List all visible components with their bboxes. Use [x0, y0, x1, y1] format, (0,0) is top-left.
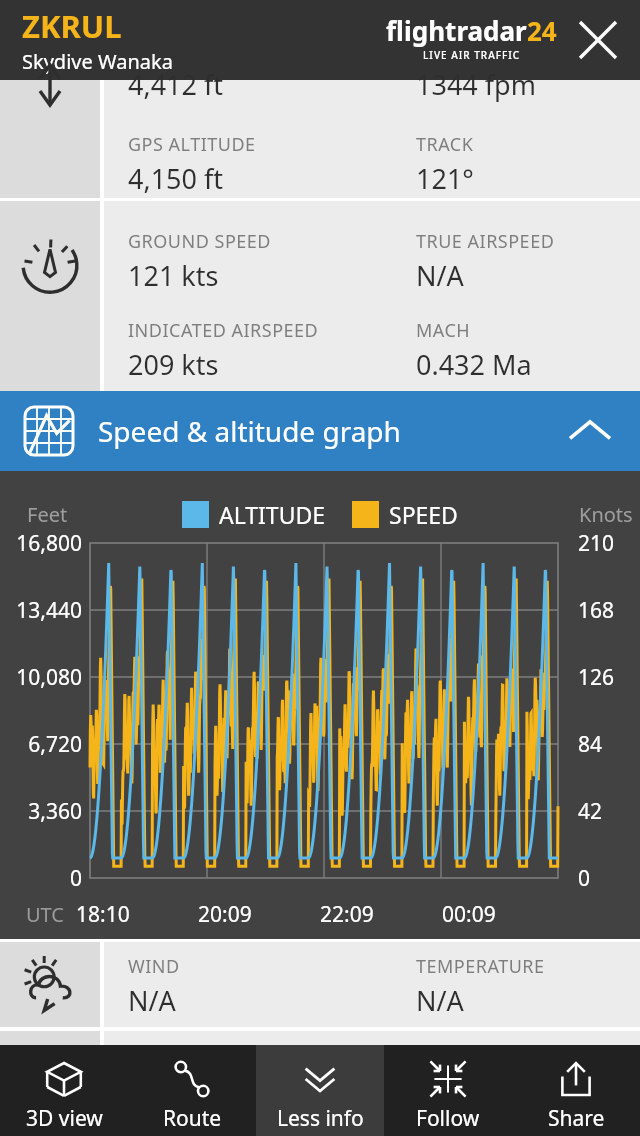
- staticText: UTC: [26, 901, 64, 928]
- button[interactable]: 3D view: [0, 1045, 128, 1136]
- button[interactable]: Close: [566, 8, 630, 72]
- staticText: 210: [578, 529, 615, 558]
- staticText: Feet: [27, 501, 68, 528]
- staticText: LIVE AIR TRAFFIC: [423, 48, 521, 62]
- button[interactable]: Share: [512, 1045, 640, 1136]
- other: Collapse: [566, 407, 614, 455]
- staticText: 168: [578, 596, 615, 625]
- staticText: WIND: [128, 954, 180, 979]
- staticText: 4,150 ft: [128, 160, 224, 197]
- staticText: 121°: [416, 160, 474, 197]
- staticText: 1344 fpm: [416, 66, 536, 103]
- staticText: Skydive Wanaka: [22, 48, 173, 75]
- staticText: Knots: [579, 501, 633, 528]
- staticText: ALTITUDE: [219, 499, 326, 530]
- staticText: 0: [578, 864, 591, 893]
- staticText: 6,720: [6, 730, 82, 759]
- button[interactable]: Route: [128, 1045, 256, 1136]
- staticText: flightradar: [386, 13, 527, 48]
- staticText: 4,412 ft: [128, 66, 224, 103]
- staticText: SPEED: [389, 499, 458, 530]
- staticText: Speed & altitude graph: [98, 412, 401, 450]
- staticText: TEMPERATURE: [416, 954, 545, 979]
- staticText: 3D view: [26, 1104, 103, 1133]
- staticText: 209 kts: [128, 346, 219, 383]
- button[interactable]: Less info: [256, 1045, 384, 1136]
- staticText: TRACK: [416, 132, 474, 157]
- staticText: N/A: [128, 982, 176, 1019]
- staticText: N/A: [416, 982, 464, 1019]
- staticText: Less info: [277, 1104, 364, 1133]
- staticText: 84: [578, 730, 603, 759]
- staticText: GROUND SPEED: [128, 229, 271, 254]
- staticText: Route: [163, 1104, 222, 1133]
- staticText: 22:09: [320, 900, 374, 929]
- staticText: MACH: [416, 318, 471, 343]
- staticText: TRUE AIRSPEED: [416, 229, 555, 254]
- staticText: 00:09: [442, 900, 496, 929]
- button[interactable]: Follow: [384, 1045, 512, 1136]
- staticText: 13,440: [6, 596, 82, 625]
- staticText: GPS ALTITUDE: [128, 132, 256, 157]
- staticText: 3,360: [6, 797, 82, 826]
- staticText: INDICATED AIRSPEED: [128, 318, 319, 343]
- staticText: 126: [578, 663, 615, 692]
- button[interactable]: Speed & altitude graph: [0, 391, 640, 471]
- staticText: 24: [527, 13, 557, 48]
- staticText: 10,080: [6, 663, 82, 692]
- staticText: ZKRUL: [22, 5, 122, 47]
- staticText: Follow: [416, 1104, 480, 1133]
- staticText: 18:10: [76, 900, 130, 929]
- staticText: Share: [548, 1104, 605, 1133]
- staticText: 121 kts: [128, 257, 219, 294]
- staticText: 0: [6, 864, 82, 893]
- staticText: 0.432 Ma: [416, 346, 532, 383]
- staticText: 42: [578, 797, 603, 826]
- staticText: 16,800: [6, 529, 82, 558]
- staticText: 20:09: [198, 900, 252, 929]
- staticText: N/A: [416, 257, 464, 294]
